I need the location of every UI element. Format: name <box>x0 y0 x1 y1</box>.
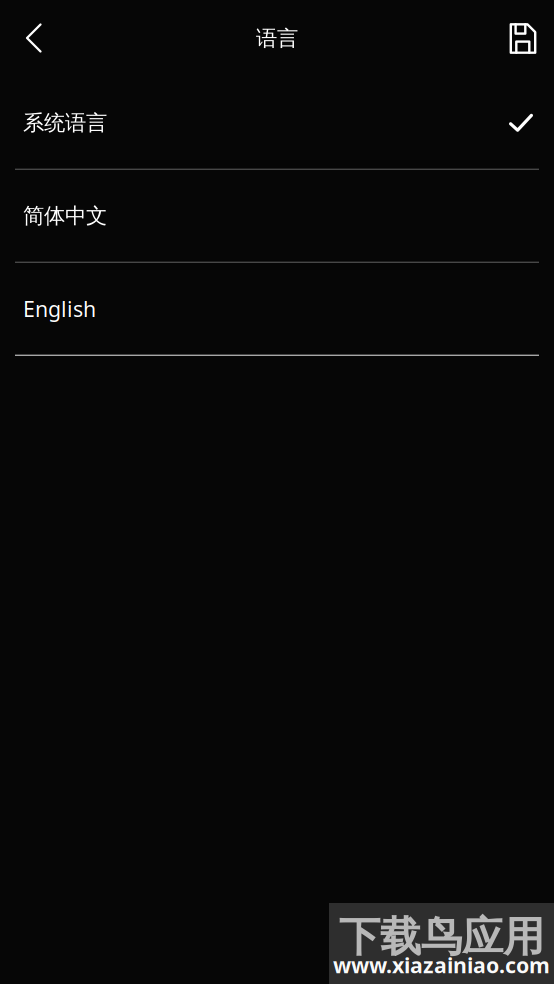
staticText: www.xiazainiao.com <box>333 951 550 979</box>
staticText: 系统语言 <box>23 110 107 136</box>
staticText: 下载鸟应用 <box>339 912 544 962</box>
button[interactable]: 简体中文 <box>0 170 554 263</box>
button[interactable]: Back <box>6 6 62 70</box>
staticText: English <box>23 295 96 323</box>
button[interactable]: English <box>0 263 554 356</box>
staticText: 语言 <box>256 25 298 52</box>
button[interactable]: 系统语言 <box>0 77 554 170</box>
staticText: 简体中文 <box>23 203 107 229</box>
button[interactable]: Save <box>492 6 554 70</box>
